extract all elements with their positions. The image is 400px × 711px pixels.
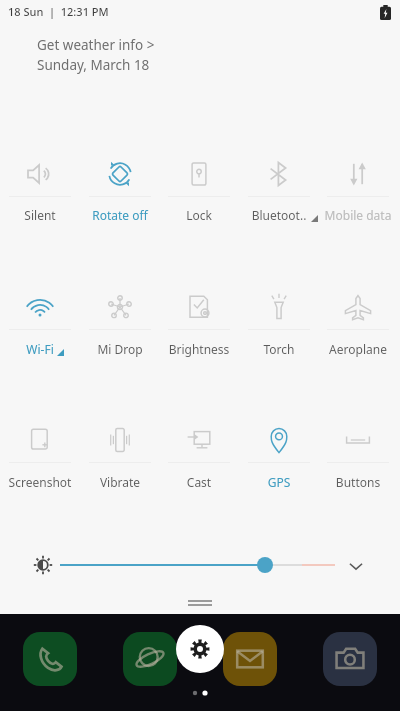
button[interactable]: Mi Drop [80, 281, 160, 333]
staticText: Buttons [313, 474, 400, 490]
button[interactable]: Torch [239, 281, 319, 333]
button[interactable]: GPS [239, 414, 319, 466]
staticText: GPS [234, 474, 324, 490]
button[interactable]: Screenshot [0, 414, 80, 466]
button[interactable]: Wi-Fi [0, 281, 80, 333]
staticText: Vibrate [75, 474, 165, 490]
staticText: Cast [154, 474, 244, 490]
button[interactable]: Mobile data [318, 148, 398, 200]
staticText: 18 Sun | 12:31 PM [8, 4, 109, 19]
button[interactable]: Brightness [60, 561, 335, 569]
staticText: Mobile data [313, 207, 400, 223]
button[interactable]: Get weather info > [37, 36, 155, 74]
button[interactable]: Expand [342, 552, 370, 580]
button[interactable]: Bluetoot.. [239, 148, 319, 200]
button[interactable]: Phone [23, 632, 77, 686]
button[interactable]: Buttons [318, 414, 398, 466]
staticText: Brightness [154, 341, 244, 357]
staticText: Torch [234, 341, 324, 357]
staticText: Sunday, March 18 [37, 56, 150, 74]
staticText: Rotate off [75, 207, 165, 223]
button[interactable]: Silent [0, 148, 80, 200]
button[interactable]: Vibrate [80, 414, 160, 466]
staticText: Lock [154, 207, 244, 223]
button[interactable]: Brightness [159, 281, 239, 333]
staticText: Wi-Fi [0, 341, 85, 357]
button[interactable]: Rotate off [80, 148, 160, 200]
staticText: Get weather info > [37, 36, 155, 54]
button[interactable]: Cast [159, 414, 239, 466]
button[interactable]: Email [223, 632, 277, 686]
button[interactable]: Camera [323, 632, 377, 686]
button[interactable]: Browser [123, 632, 177, 686]
button[interactable]: Aeroplane [318, 281, 398, 333]
button[interactable]: Lock [159, 148, 239, 200]
button[interactable]: Settings [176, 625, 224, 673]
staticText: Aeroplane [313, 341, 400, 357]
staticText: Bluetoot.. [234, 207, 324, 223]
staticText: Mi Drop [75, 341, 165, 357]
staticText: Screenshot [0, 474, 85, 490]
staticText: Silent [0, 207, 85, 223]
